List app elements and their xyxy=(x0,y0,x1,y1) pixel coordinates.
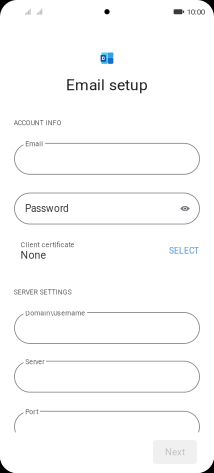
staticText: Client certificate xyxy=(20,241,74,249)
staticText: Port xyxy=(25,408,38,416)
staticText: Email setup xyxy=(66,76,148,94)
staticText: None xyxy=(20,249,46,261)
staticText: Password xyxy=(25,203,69,214)
button[interactable]: Show password xyxy=(175,193,195,224)
staticText: 10:00 xyxy=(187,7,205,16)
button[interactable]: Next xyxy=(153,440,197,464)
staticText: Next xyxy=(165,446,185,458)
staticText: SERVER SETTINGS xyxy=(14,288,72,296)
staticText: Domain\Username xyxy=(25,309,85,317)
staticText: SELECT xyxy=(169,246,199,256)
staticText: ACCOUNT INFO xyxy=(14,119,62,127)
button[interactable]: Client certificate xyxy=(0,224,214,261)
staticText: Server xyxy=(25,358,44,366)
staticText: Email xyxy=(25,140,43,148)
